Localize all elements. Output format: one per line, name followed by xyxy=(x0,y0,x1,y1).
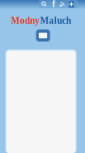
button[interactable]: Menu xyxy=(35,29,50,42)
button[interactable]: Add xyxy=(68,0,74,8)
staticText: f xyxy=(52,0,55,9)
button[interactable]: Facebook xyxy=(51,0,56,7)
button[interactable]: Search xyxy=(41,1,47,7)
button[interactable]: RSS feed xyxy=(60,1,65,7)
staticText: Modny xyxy=(11,15,40,26)
staticText: Maluch xyxy=(40,15,71,26)
